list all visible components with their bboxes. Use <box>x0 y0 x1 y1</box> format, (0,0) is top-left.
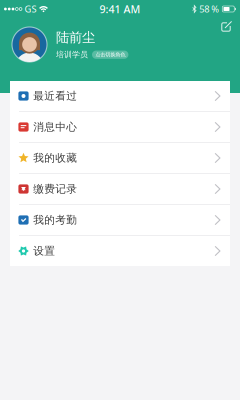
button[interactable]: 点击切换角色 <box>92 51 128 59</box>
button[interactable]: 设置 <box>10 236 230 266</box>
staticText: 点击切换角色 <box>95 51 125 58</box>
staticText: 我的收藏 <box>33 151 77 164</box>
staticText: 培训学员 <box>56 50 88 60</box>
staticText: GS <box>24 3 36 15</box>
button[interactable]: 我的收藏 <box>10 143 230 173</box>
button[interactable]: 最近看过 <box>10 81 230 111</box>
staticText: 58 % <box>199 3 219 15</box>
staticText: 9:41 AM <box>99 2 140 16</box>
staticText: 缴费记录 <box>33 182 77 195</box>
button[interactable]: 消息中心 <box>10 112 230 142</box>
button[interactable]: Avatar <box>12 27 47 62</box>
staticText: 最近看过 <box>33 89 77 102</box>
staticText: 我的考勤 <box>33 213 77 226</box>
staticText: 消息中心 <box>33 120 77 133</box>
button[interactable]: 我的考勤 <box>10 205 230 235</box>
button[interactable]: Compose <box>216 17 236 37</box>
staticText: 设置 <box>33 244 55 257</box>
button[interactable]: 缴费记录 <box>10 174 230 204</box>
staticText: 陆前尘 <box>56 29 95 46</box>
